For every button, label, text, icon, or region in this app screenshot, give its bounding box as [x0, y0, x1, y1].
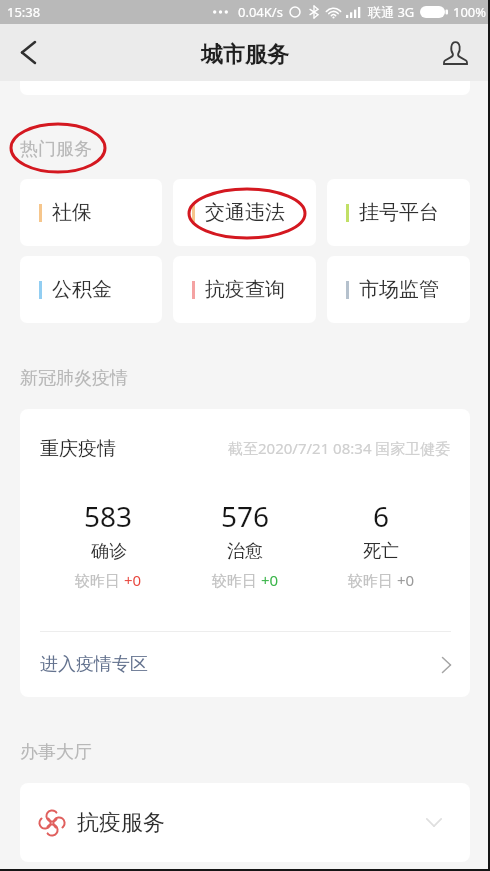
staticText: 治愈 [227, 540, 263, 563]
button[interactable]: Profile [427, 24, 483, 81]
staticText: 公积金 [52, 277, 112, 302]
staticText: 死亡 [363, 540, 399, 563]
button[interactable]: 市场监管 [327, 256, 470, 323]
staticText: 确诊 [91, 540, 127, 563]
staticText: 6 [373, 497, 390, 535]
staticText: 0.04K/s [238, 3, 283, 21]
staticText: 社保 [52, 200, 92, 225]
staticText: 热门服务 [20, 138, 92, 161]
button[interactable]: 交通违法 [173, 179, 316, 246]
staticText: 进入疫情专区 [40, 653, 148, 676]
button[interactable]: Back [0, 24, 56, 81]
staticText: 较昨日 +0 [212, 570, 279, 590]
staticText: 较昨日 +0 [348, 570, 415, 590]
staticText: 城市服务 [201, 41, 289, 69]
button[interactable]: 挂号平台 [327, 179, 470, 246]
staticText: 较昨日 +0 [75, 570, 142, 590]
staticText: 576 [221, 497, 270, 535]
staticText: 办事大厅 [20, 741, 92, 764]
staticText: 新冠肺炎疫情 [20, 367, 128, 390]
staticText: 市场监管 [359, 277, 439, 302]
staticText: 100% [453, 3, 487, 21]
staticText: 583 [84, 497, 133, 535]
button[interactable]: 公积金 [20, 256, 162, 323]
staticText: 挂号平台 [359, 200, 439, 225]
staticText: 截至2020/7/21 08:34 国家卫健委 [228, 438, 451, 458]
staticText: 重庆疫情 [40, 437, 116, 461]
button[interactable]: 抗疫查询 [173, 256, 316, 323]
staticText: 15:38 [7, 3, 41, 21]
button[interactable]: 进入疫情专区 [20, 632, 470, 697]
staticText: 抗疫查询 [205, 277, 285, 302]
staticText: 交通违法 [205, 200, 285, 225]
button[interactable]: 社保 [20, 179, 162, 246]
staticText: 抗疫服务 [77, 809, 165, 837]
button[interactable]: 抗疫服务 [20, 783, 470, 862]
staticText: 联通 3G [368, 3, 415, 21]
